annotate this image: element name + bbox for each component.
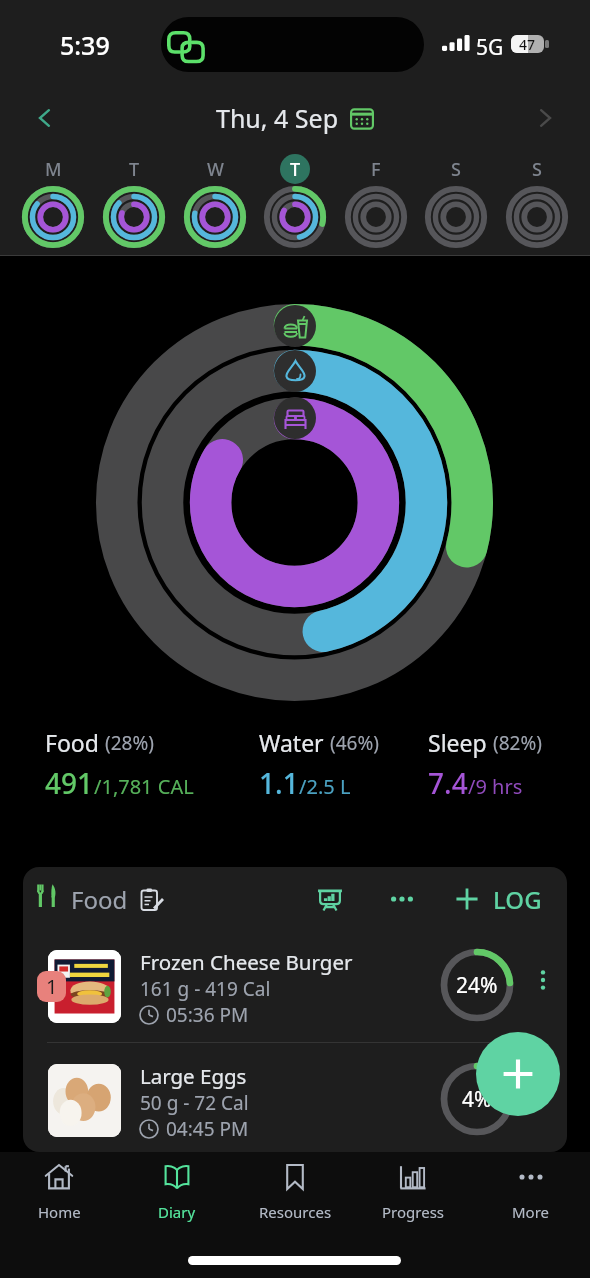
staticText: 50 g - 72 Cal	[140, 1090, 249, 1116]
button[interactable]: Food	[35, 883, 163, 915]
staticText: 05:36 PM	[166, 1002, 249, 1028]
button[interactable]: Next day	[526, 99, 564, 137]
button[interactable]: Water	[259, 727, 379, 802]
button[interactable]: F	[336, 150, 416, 250]
staticText: T	[129, 157, 140, 182]
staticText: /9 hrs	[468, 773, 523, 800]
button[interactable]: Progress	[354, 1152, 472, 1224]
button[interactable]: Thu, 4 Sep	[216, 101, 374, 135]
button[interactable]: Previous day	[26, 99, 64, 137]
staticText: Home	[38, 1202, 81, 1222]
staticText: Resources	[259, 1202, 332, 1222]
button[interactable]: Home	[0, 1152, 118, 1224]
staticText: 04:45 PM	[166, 1116, 249, 1142]
staticText: Water	[259, 727, 324, 758]
staticText: T	[290, 157, 301, 182]
button[interactable]: W	[175, 150, 255, 250]
button[interactable]: T	[94, 150, 174, 250]
staticText: 47	[519, 35, 536, 53]
staticText: Sleep	[428, 727, 487, 758]
button[interactable]: Add food entry	[476, 1032, 560, 1116]
staticText: S	[451, 157, 461, 182]
staticText: 491	[45, 764, 94, 802]
button[interactable]: LOG	[455, 883, 542, 915]
button[interactable]: Diary	[118, 1152, 236, 1224]
button[interactable]: M	[13, 150, 93, 250]
button[interactable]: Ring detail	[274, 350, 316, 392]
staticText: Food	[45, 727, 99, 758]
staticText: M	[45, 157, 62, 182]
staticText: (46%)	[330, 730, 379, 756]
staticText: LOG	[493, 883, 542, 915]
staticText: (82%)	[493, 730, 542, 756]
staticText: 5G	[476, 33, 504, 62]
staticText: Large Eggs	[140, 1062, 247, 1090]
button[interactable]: Nutrition chart	[311, 883, 349, 915]
staticText: W	[207, 157, 224, 182]
button[interactable]: Sleep	[428, 727, 542, 802]
button[interactable]: Item menu	[525, 1076, 561, 1112]
staticText: 4%	[462, 1085, 492, 1114]
button[interactable]: Ring detail	[274, 397, 316, 439]
staticText: Progress	[382, 1202, 444, 1222]
staticText: (28%)	[105, 730, 154, 756]
staticText: 1.1	[259, 764, 299, 802]
button[interactable]: Food	[45, 727, 194, 802]
staticText: 161 g - 419 Cal	[140, 976, 271, 1002]
staticText: Diary	[158, 1202, 196, 1222]
button[interactable]: S	[497, 150, 577, 250]
staticText: 1	[46, 973, 58, 1000]
button[interactable]: T	[255, 150, 335, 250]
button[interactable]: Ring detail	[274, 305, 316, 347]
staticText: Thu, 4 Sep	[216, 101, 339, 135]
staticText: Food	[71, 883, 128, 915]
button[interactable]: Large Eggs	[23, 1052, 567, 1152]
staticText: F	[371, 157, 381, 182]
staticText: /1,781 CAL	[94, 773, 194, 800]
button[interactable]: Resources	[236, 1152, 354, 1224]
staticText: /2.5 L	[299, 773, 351, 800]
button[interactable]: 1	[23, 938, 567, 1042]
button[interactable]: More options	[383, 883, 421, 915]
staticText: S	[532, 157, 542, 182]
staticText: 7.4	[428, 764, 468, 802]
staticText: 24%	[456, 971, 498, 1000]
staticText: More	[512, 1202, 550, 1222]
button[interactable]: Item menu	[525, 962, 561, 998]
button[interactable]: More	[472, 1152, 590, 1224]
staticText: 5:39	[60, 28, 110, 62]
button[interactable]: S	[416, 150, 496, 250]
staticText: Frozen Cheese Burger	[140, 948, 353, 976]
